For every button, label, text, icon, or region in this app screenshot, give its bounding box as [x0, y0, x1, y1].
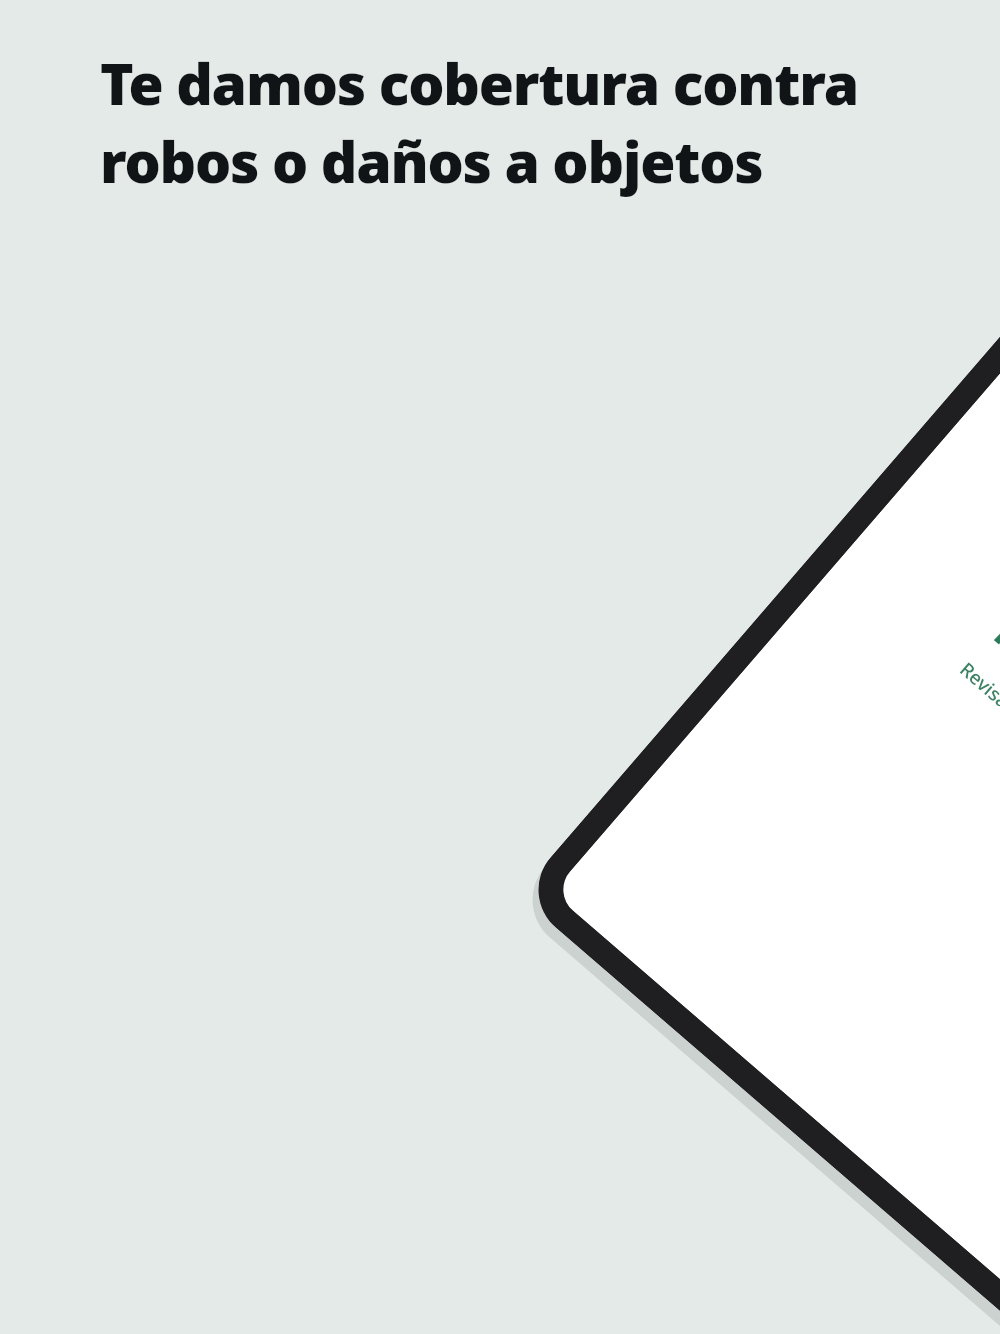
staticText: robos o daños a objetos [100, 122, 763, 200]
staticText: ¡Hemos recibido tu información! [976, 594, 1000, 1036]
staticText: Te damos cobertura contra [100, 44, 859, 122]
staticText: Revisa tu correo electrónico ya que dare… [925, 648, 1000, 1094]
